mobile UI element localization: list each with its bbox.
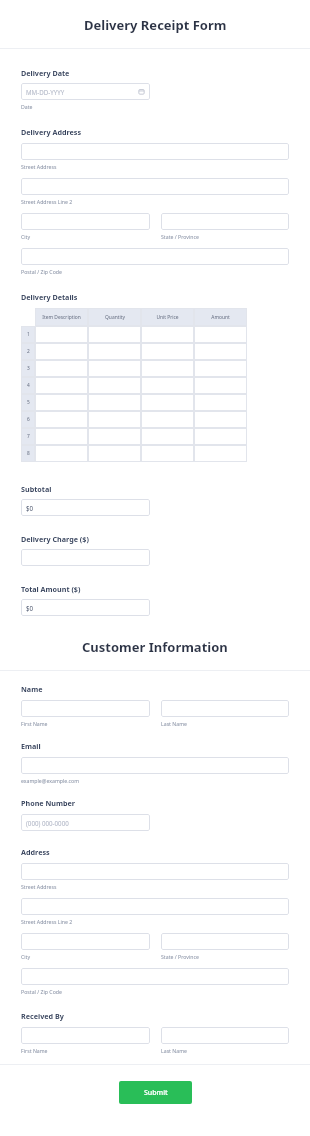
- staticText: $0: [26, 604, 34, 612]
- button[interactable]: [35, 445, 88, 462]
- button[interactable]: [35, 411, 88, 428]
- button[interactable]: [21, 933, 150, 950]
- staticText: Postal / Zip Code: [21, 268, 62, 275]
- button[interactable]: [88, 377, 141, 394]
- staticText: First Name: [21, 720, 48, 727]
- button[interactable]: $0: [21, 499, 150, 516]
- staticText: First Name: [21, 1047, 48, 1054]
- button[interactable]: [21, 213, 150, 230]
- staticText: Quantity: [105, 314, 125, 321]
- button[interactable]: [141, 445, 194, 462]
- staticText: MM-DD-YYYY: [26, 88, 65, 96]
- button[interactable]: [35, 360, 88, 377]
- button[interactable]: [194, 377, 247, 394]
- button[interactable]: [141, 326, 194, 343]
- staticText: Email: [21, 741, 41, 751]
- button[interactable]: [35, 343, 88, 360]
- staticText: (000) 000-0000: [26, 819, 69, 827]
- staticText: 8: [27, 450, 30, 457]
- staticText: Delivery Details: [21, 292, 78, 302]
- button[interactable]: [194, 411, 247, 428]
- button[interactable]: [194, 394, 247, 411]
- button[interactable]: MM-DD-YYYY: [21, 83, 150, 100]
- staticText: Customer Information: [82, 638, 228, 656]
- staticText: Unit Price: [156, 314, 179, 321]
- staticText: Subtotal: [21, 484, 52, 494]
- button[interactable]: [194, 445, 247, 462]
- button[interactable]: [21, 143, 289, 160]
- button[interactable]: [35, 394, 88, 411]
- button[interactable]: [35, 326, 88, 343]
- button[interactable]: [141, 428, 194, 445]
- button[interactable]: [141, 360, 194, 377]
- button[interactable]: [141, 377, 194, 394]
- staticText: Street Address: [21, 883, 57, 890]
- staticText: 4: [27, 382, 30, 389]
- button[interactable]: [88, 326, 141, 343]
- button[interactable]: [141, 411, 194, 428]
- staticText: State / Province: [161, 233, 199, 240]
- staticText: Total Amount ($): [21, 584, 81, 594]
- staticText: Delivery Receipt Form: [84, 16, 227, 34]
- button[interactable]: [161, 700, 289, 717]
- button[interactable]: [194, 428, 247, 445]
- button[interactable]: [141, 343, 194, 360]
- staticText: 7: [27, 433, 30, 440]
- staticText: Phone Number: [21, 798, 76, 808]
- staticText: Date: [21, 103, 33, 110]
- staticText: Address: [21, 847, 50, 857]
- staticText: $0: [26, 504, 34, 512]
- button[interactable]: [88, 343, 141, 360]
- staticText: City: [21, 953, 31, 960]
- staticText: 6: [27, 416, 30, 423]
- staticText: Last Name: [161, 1047, 187, 1054]
- button[interactable]: [88, 360, 141, 377]
- staticText: 2: [27, 348, 30, 355]
- button[interactable]: [161, 933, 289, 950]
- button[interactable]: (000) 000-0000: [21, 814, 150, 831]
- button[interactable]: [21, 757, 289, 774]
- button[interactable]: [88, 428, 141, 445]
- button[interactable]: [21, 700, 150, 717]
- staticText: example@example.com: [21, 777, 80, 784]
- button[interactable]: [35, 377, 88, 394]
- button[interactable]: [161, 213, 289, 230]
- staticText: State / Province: [161, 953, 199, 960]
- button[interactable]: [194, 326, 247, 343]
- button[interactable]: [141, 394, 194, 411]
- staticText: Item Description: [42, 314, 81, 321]
- staticText: Delivery Charge ($): [21, 534, 89, 544]
- staticText: Delivery Date: [21, 68, 70, 78]
- staticText: City: [21, 233, 31, 240]
- staticText: Street Address: [21, 163, 57, 170]
- button[interactable]: Submit: [119, 1081, 192, 1104]
- button[interactable]: [88, 394, 141, 411]
- staticText: Name: [21, 684, 43, 694]
- staticText: Postal / Zip Code: [21, 988, 62, 995]
- button[interactable]: $0: [21, 599, 150, 616]
- button[interactable]: [21, 178, 289, 195]
- button[interactable]: [21, 549, 150, 566]
- button[interactable]: [21, 863, 289, 880]
- staticText: Delivery Address: [21, 127, 82, 137]
- staticText: Submit: [144, 1088, 168, 1098]
- staticText: 1: [27, 331, 30, 338]
- staticText: Received By: [21, 1011, 64, 1021]
- button[interactable]: [21, 968, 289, 985]
- staticText: 5: [27, 399, 30, 406]
- button[interactable]: [21, 248, 289, 265]
- button[interactable]: [88, 445, 141, 462]
- staticText: Last Name: [161, 720, 187, 727]
- button[interactable]: [161, 1027, 289, 1044]
- button[interactable]: [194, 343, 247, 360]
- button[interactable]: [194, 360, 247, 377]
- staticText: Amount: [211, 314, 230, 321]
- button[interactable]: [21, 1027, 150, 1044]
- button[interactable]: [21, 898, 289, 915]
- button[interactable]: [88, 411, 141, 428]
- button[interactable]: [35, 428, 88, 445]
- staticText: 3: [27, 365, 30, 372]
- staticText: Street Address Line 2: [21, 198, 73, 205]
- staticText: Street Address Line 2: [21, 918, 73, 925]
